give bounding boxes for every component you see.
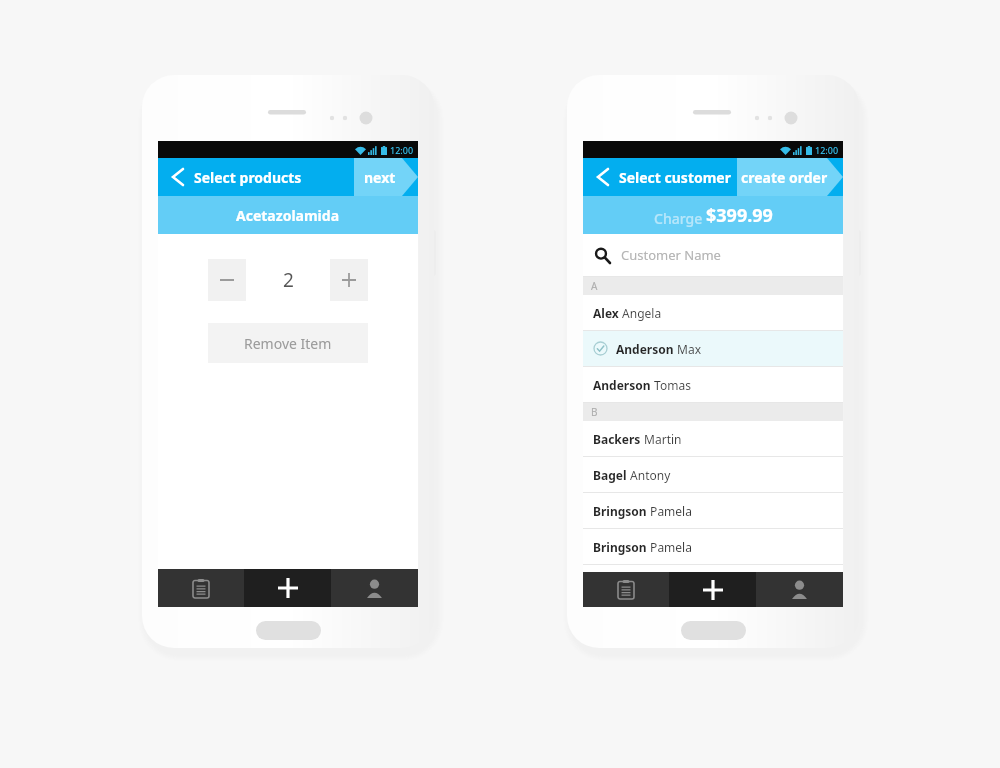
staticText: Anderson <box>616 341 674 357</box>
staticText: Pamela <box>647 503 692 519</box>
button[interactable]: Decrease <box>208 259 246 301</box>
staticText: Bringson <box>593 539 647 555</box>
button[interactable]: Customer Name <box>583 234 843 276</box>
staticText: Tomas <box>651 377 691 393</box>
button[interactable]: Anderson <box>583 331 843 366</box>
staticText: Backers <box>593 431 641 447</box>
staticText: 2 <box>283 267 294 293</box>
staticText: B <box>591 405 598 419</box>
staticText: A <box>591 279 598 293</box>
staticText: next <box>364 168 396 187</box>
button[interactable]: Customers <box>756 572 843 607</box>
staticText: Bagel <box>593 467 627 483</box>
button[interactable]: Backers <box>583 421 843 456</box>
button[interactable]: next <box>354 158 418 196</box>
button[interactable]: Orders <box>583 572 669 607</box>
staticText: Angela <box>619 305 662 321</box>
staticText: 12:00 <box>390 144 414 156</box>
button[interactable]: Back <box>592 166 614 188</box>
button[interactable]: Bringson <box>583 493 843 528</box>
button[interactable]: Alex <box>583 295 843 330</box>
staticText: Acetazolamida <box>236 206 340 225</box>
staticText: Alex <box>593 305 619 321</box>
button[interactable]: Bagel <box>583 457 843 492</box>
staticText: Select customer <box>619 168 731 187</box>
staticText: Antony <box>627 467 671 483</box>
staticText: Charge <box>654 209 706 228</box>
staticText: 12:00 <box>815 144 839 156</box>
button[interactable]: Remove Item <box>208 323 368 363</box>
staticText: create order <box>741 168 828 187</box>
staticText: Martin <box>641 431 682 447</box>
button[interactable]: Anderson <box>583 367 843 402</box>
staticText: Max <box>674 341 702 357</box>
button[interactable]: Bringson <box>583 529 843 564</box>
staticText: Pamela <box>647 539 692 555</box>
staticText: Remove Item <box>244 334 332 353</box>
staticText: Anderson <box>593 377 651 393</box>
staticText: Select products <box>194 168 302 187</box>
button[interactable]: Orders <box>158 569 244 607</box>
button[interactable]: Add <box>244 569 331 607</box>
button[interactable]: Increase <box>330 259 368 301</box>
button[interactable]: Customers <box>331 569 418 607</box>
staticText: Customer Name <box>621 246 721 264</box>
staticText: Bringson <box>593 503 647 519</box>
staticText: $399.99 <box>706 203 773 228</box>
button[interactable]: Back <box>167 166 189 188</box>
button[interactable]: Add <box>669 572 756 607</box>
button[interactable]: create order <box>737 158 843 196</box>
